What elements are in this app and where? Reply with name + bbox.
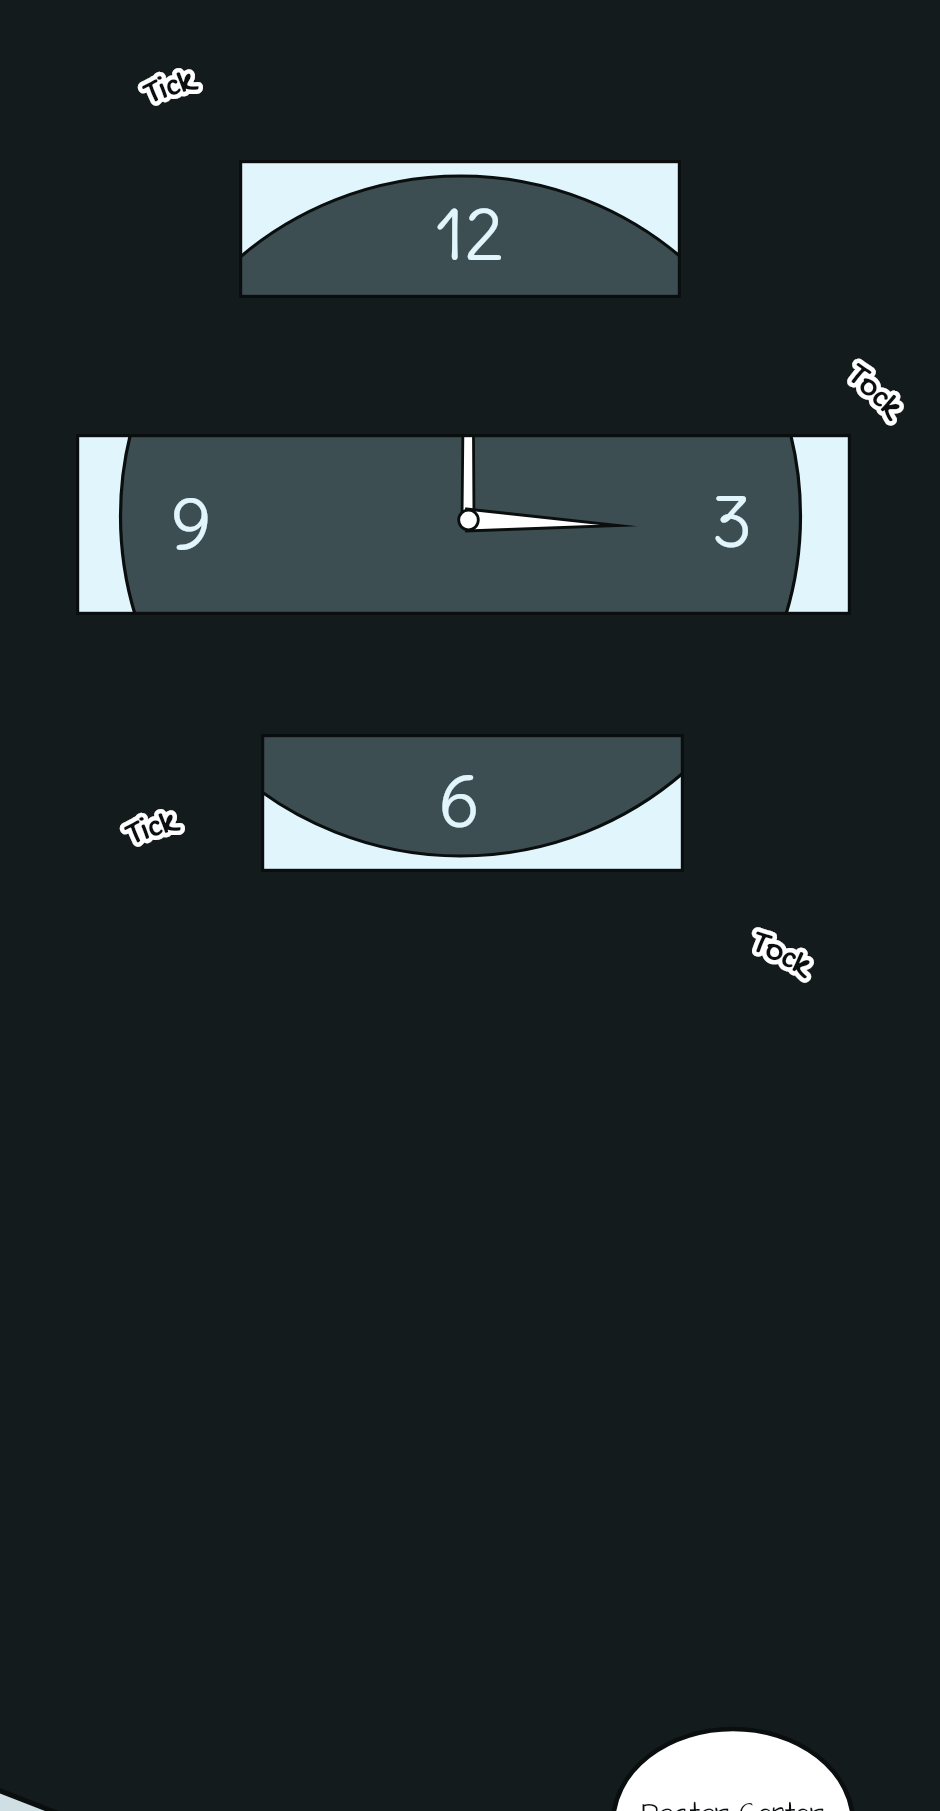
button[interactable]: Clock hours 12: [239, 160, 681, 298]
button[interactable]: Doctor Center: [613, 1729, 853, 1811]
button[interactable]: Clock hours 6: [261, 734, 684, 872]
button[interactable]: Clock face with hands: [76, 434, 851, 615]
